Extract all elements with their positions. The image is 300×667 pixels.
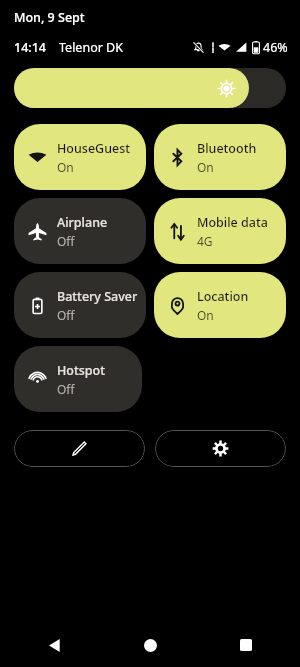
staticText: Off — [57, 233, 75, 249]
button[interactable]: Home — [120, 623, 180, 667]
button[interactable]: Mobile data — [154, 198, 286, 264]
button[interactable]: Bluetooth — [154, 124, 286, 190]
staticText: Airplane mode — [57, 214, 138, 231]
staticText: Off — [57, 307, 75, 323]
staticText: Battery Saver — [57, 288, 138, 305]
staticText: 14:14 — [14, 39, 47, 56]
staticText: Hotspot — [57, 362, 106, 379]
staticText: HouseGuest — [57, 140, 131, 157]
staticText: Location — [197, 288, 249, 305]
staticText: 46% — [263, 39, 288, 56]
staticText: On — [197, 159, 214, 175]
button[interactable]: Settings — [155, 430, 286, 467]
button[interactable]: Recent apps — [216, 623, 276, 667]
button[interactable]: Hotspot — [14, 346, 142, 412]
button[interactable]: Back — [24, 623, 84, 667]
staticText: 4G — [197, 233, 213, 249]
button[interactable]: Battery Saver — [14, 272, 146, 338]
button[interactable]: HouseGuest — [14, 124, 146, 190]
button[interactable]: Location — [154, 272, 286, 338]
staticText: Bluetooth — [197, 140, 257, 157]
staticText: Off — [57, 381, 75, 397]
button[interactable]: Edit — [14, 430, 145, 467]
staticText: Telenor DK — [59, 39, 123, 56]
staticText: Mobile data — [197, 214, 268, 231]
button[interactable]: Airplane mode — [14, 198, 146, 264]
staticText: On — [197, 307, 214, 323]
button[interactable]: Brightness — [14, 68, 249, 108]
staticText: Mon, 9 Sept — [14, 9, 85, 26]
staticText: On — [57, 159, 74, 175]
